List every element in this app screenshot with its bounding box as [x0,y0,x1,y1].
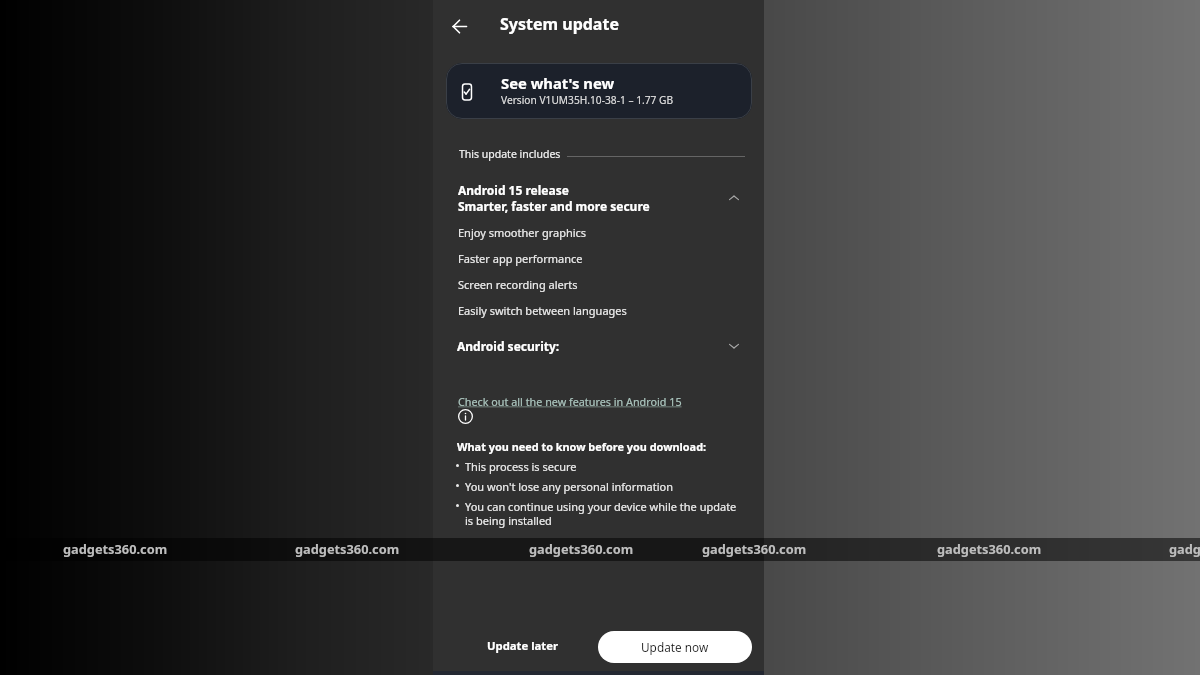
staticText: Enjoy smoother graphics [458,225,587,240]
button[interactable]: Back [441,8,477,44]
staticText: You can continue using your device while… [465,499,737,529]
staticText: Easily switch between languages [458,303,627,318]
staticText: System update [500,13,619,35]
button[interactable]: You won't lose any personal information [433,479,764,494]
staticText: Version V1UM35H.10-38-1 – 1.77 GB [501,93,674,107]
staticText: Android 15 release [458,182,569,198]
button[interactable]: Faster app performance [433,247,764,269]
staticText: gadgets360.com [295,540,400,557]
staticText: Update now [641,639,709,655]
staticText: gadgets360.com [937,540,1042,557]
button[interactable]: This process is secure [433,459,764,474]
staticText: Android security: [457,338,724,354]
staticText: See what's new [501,73,615,93]
other: Expand Android security [724,336,744,356]
button[interactable]: Android security: [433,332,764,360]
other: Collapse Android 15 release [724,188,744,208]
staticText: This process is secure [465,459,577,474]
staticText: Faster app performance [458,251,583,266]
button[interactable]: See what's new [446,63,752,119]
staticText: gadgets360.com [702,540,807,557]
staticText: gadgets360.com [1169,540,1200,557]
button[interactable]: Screen recording alerts [433,273,764,295]
staticText: Screen recording alerts [458,277,578,292]
button[interactable]: Information [458,409,473,424]
button[interactable]: Enjoy smoother graphics [433,221,764,243]
button[interactable]: Android 15 release [433,181,764,215]
button[interactable]: You can continue using your device while… [433,499,764,529]
button[interactable]: Update later [475,629,571,661]
button[interactable]: Check out all the new features in Androi… [458,394,682,409]
button[interactable]: Easily switch between languages [433,299,764,321]
staticText: What you need to know before you downloa… [457,439,707,454]
staticText: This update includes [459,147,561,161]
staticText: gadgets360.com [63,540,168,557]
button[interactable]: Update now [598,631,752,663]
staticText: You won't lose any personal information [465,479,673,494]
staticText: Update later [487,638,559,653]
staticText: Smarter, faster and more secure [458,198,650,214]
staticText: gadgets360.com [529,540,634,557]
